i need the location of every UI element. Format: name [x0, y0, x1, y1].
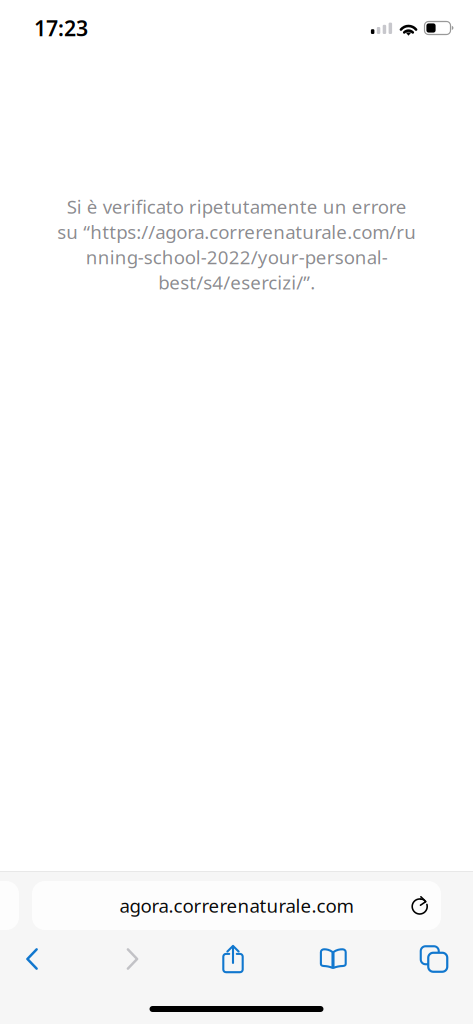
staticText: 17:23: [34, 14, 88, 42]
button[interactable]: Tabs: [405, 936, 463, 982]
staticText: agora.correrenaturale.com: [119, 893, 353, 918]
staticText: Si è verificato ripetutamente un errore …: [57, 194, 416, 295]
button[interactable]: Bookmarks: [304, 936, 362, 982]
button[interactable]: Back: [3, 936, 61, 982]
button[interactable]: Forward: [103, 936, 161, 982]
button[interactable]: agora.correrenaturale.com: [32, 881, 441, 930]
button[interactable]: Share: [204, 936, 262, 982]
